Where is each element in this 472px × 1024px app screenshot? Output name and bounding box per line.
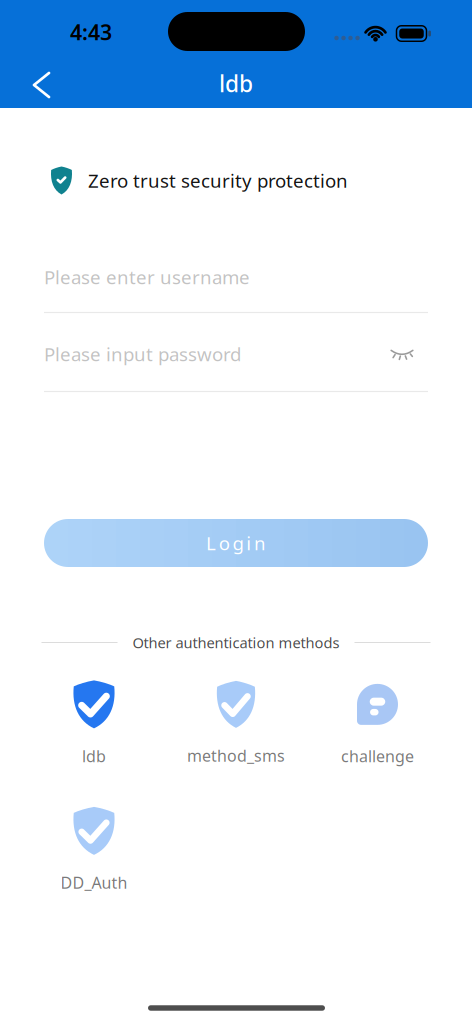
staticText: L: [206, 531, 216, 555]
staticText: method_sms: [187, 745, 285, 766]
staticText: challenge: [341, 745, 414, 767]
staticText: Zero trust security protection: [88, 168, 348, 193]
staticText: 4:43: [70, 18, 112, 46]
button[interactable]: Username: [44, 253, 428, 301]
button[interactable]: challenge: [341, 680, 414, 767]
button[interactable]: DD_Auth: [60, 807, 127, 893]
button[interactable]: Show password: [384, 342, 420, 369]
button[interactable]: method_sms: [187, 681, 285, 766]
staticText: i: [246, 531, 251, 555]
staticText: Please input password: [44, 342, 241, 366]
staticText: Other authentication methods: [132, 633, 339, 652]
staticText: Please enter username: [44, 265, 250, 289]
staticText: g: [232, 531, 243, 555]
button[interactable]: ldb: [72, 680, 116, 767]
button[interactable]: L: [44, 519, 428, 567]
staticText: o: [219, 531, 230, 555]
staticText: n: [254, 531, 266, 555]
staticText: ldb: [219, 68, 253, 98]
staticText: ldb: [82, 745, 106, 767]
button[interactable]: Password: [44, 330, 428, 378]
button[interactable]: Back: [24, 63, 59, 107]
staticText: DD_Auth: [60, 872, 127, 893]
